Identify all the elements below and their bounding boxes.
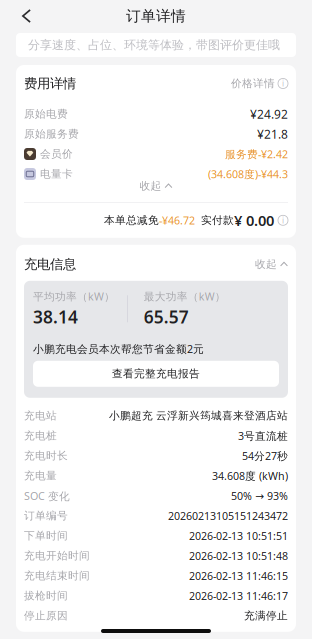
staticText: 50% → 93%: [231, 489, 288, 503]
staticText: SOC 变化: [24, 489, 70, 503]
staticText: 原始电费: [24, 107, 68, 120]
staticText: 小鹏超充 云浮新兴筠城喜来登酒店站: [109, 409, 288, 422]
button[interactable]: 收起: [139, 178, 172, 194]
staticText: 价格详情: [231, 77, 275, 90]
staticText: i: [282, 215, 284, 226]
staticText: 下单时间: [24, 529, 68, 542]
staticText: 服务费-¥2.42: [225, 147, 288, 161]
staticText: 2026-02-13 10:51:48: [189, 549, 288, 563]
staticText: 20260213105151243472: [168, 509, 288, 523]
staticText: 会员价: [40, 147, 73, 160]
staticText: 收起: [139, 179, 161, 192]
staticText: (34.608度)-¥44.3: [208, 167, 288, 181]
staticText: i: [282, 78, 284, 89]
staticText: 2026-02-13 11:46:15: [189, 569, 288, 583]
staticText: 本单总减免: [104, 214, 159, 227]
button[interactable]: 价格详情: [231, 77, 288, 90]
staticText: 拔枪时间: [24, 589, 68, 602]
staticText: 65.57: [144, 305, 189, 328]
staticText: ¥ 0.00: [234, 211, 274, 230]
staticText: 38.14: [33, 305, 78, 328]
staticText: ¥21.8: [257, 126, 288, 142]
staticText: 充电站: [24, 409, 57, 422]
staticText: 34.608度 (kWh): [212, 469, 288, 483]
staticText: -¥46.72: [159, 213, 195, 227]
staticText: 停止原因: [24, 609, 68, 622]
staticText: 54分27秒: [242, 449, 288, 463]
staticText: 充电信息: [24, 256, 76, 272]
staticText: 原始服务费: [24, 127, 79, 140]
staticText: 3号直流桩: [238, 429, 288, 443]
staticText: 2026-02-13 10:51:51: [189, 529, 288, 543]
staticText: 平均功率（kW）: [33, 289, 115, 303]
staticText: 小鹏充电会员本次帮您节省金额2元: [33, 342, 204, 356]
staticText: 电量卡: [40, 167, 73, 180]
staticText: 收起: [255, 258, 277, 271]
staticText: 充电桩: [24, 429, 57, 442]
staticText: 订单详情: [126, 7, 186, 25]
staticText: 充电时长: [24, 449, 68, 462]
staticText: 分享速度、占位、环境等体验，带图评价更佳哦: [28, 38, 280, 52]
staticText: 最大功率（kW）: [144, 289, 226, 303]
staticText: 费用详情: [24, 75, 76, 92]
button[interactable]: 查看完整充电报告: [33, 361, 279, 387]
staticText: 2026-02-13 11:46:17: [189, 589, 288, 603]
button[interactable]: 分享速度、占位、环境等体验，带图评价更佳哦: [16, 33, 296, 57]
staticText: 充电开始时间: [24, 549, 90, 562]
staticText: 查看完整充电报告: [112, 367, 200, 380]
staticText: 充满停止: [244, 609, 288, 622]
staticText: 订单编号: [24, 509, 68, 522]
staticText: 充电量: [24, 469, 57, 482]
staticText: 充电结束时间: [24, 569, 90, 582]
button[interactable]: 返回: [0, 3, 53, 29]
staticText: ¥24.92: [250, 106, 288, 122]
staticText: 实付款: [195, 214, 234, 227]
button[interactable]: 收起: [255, 258, 288, 271]
